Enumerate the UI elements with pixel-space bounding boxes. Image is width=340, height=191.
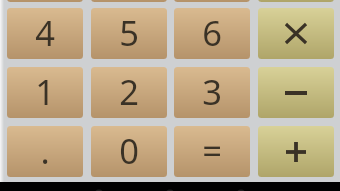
button[interactable]: 6 [174,8,250,59]
staticText: 3 [202,68,222,115]
button[interactable]: 2 [91,67,167,118]
staticText: 6 [202,9,222,56]
staticText: 1 [35,68,55,115]
button[interactable]: plus [258,126,334,177]
button[interactable]: 1 [7,67,83,118]
staticText: 2 [119,68,139,115]
staticText: = [202,127,222,174]
button[interactable]: 5 [91,8,167,59]
button[interactable]: minus [258,67,334,118]
staticText: 0 [119,127,139,174]
button[interactable]: = [174,126,250,177]
button[interactable]: 3 [174,67,250,118]
staticText: . [40,127,50,174]
staticText: 4 [35,9,55,56]
button[interactable]: 0 [91,126,167,177]
staticText: 5 [119,9,139,56]
button[interactable]: 4 [7,8,83,59]
button[interactable]: . [7,126,83,177]
button[interactable]: multiply [258,8,334,59]
